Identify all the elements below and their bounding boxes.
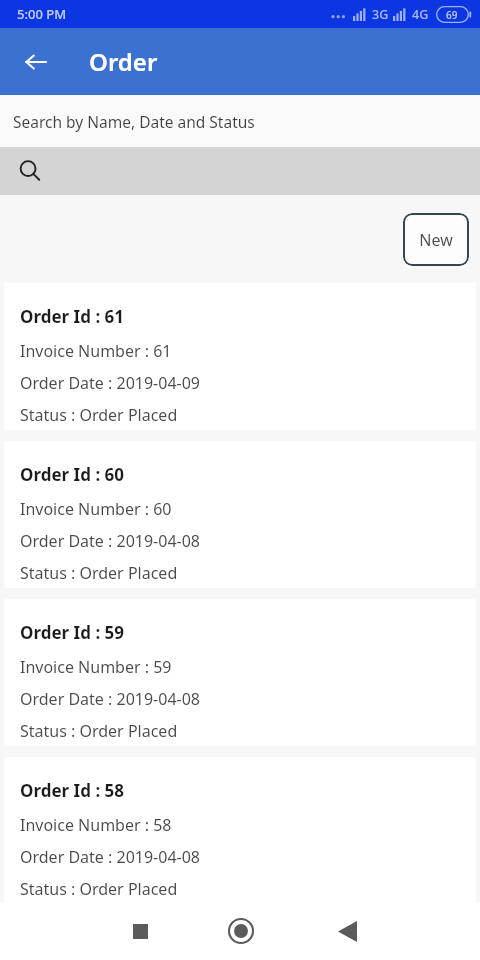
staticText: Order (89, 45, 158, 78)
button[interactable]: Search (0, 147, 480, 195)
button[interactable]: New (403, 213, 469, 266)
staticText: Order Id : 58 (20, 779, 125, 802)
button[interactable]: Back (323, 907, 371, 955)
staticText: Invoice Number : 58 (20, 814, 172, 836)
button[interactable]: Order Id : 59 (4, 599, 476, 746)
staticText: Status : Order Placed (20, 404, 178, 426)
staticText: Status : Order Placed (20, 878, 178, 900)
button[interactable]: Order Id : 60 (4, 441, 476, 588)
button[interactable]: Search by Name, Date and Status (0, 95, 480, 147)
staticText: Invoice Number : 61 (20, 340, 172, 362)
staticText: Order Date : 2019-04-08 (20, 688, 201, 710)
staticText: Order Date : 2019-04-08 (20, 846, 201, 868)
staticText: Order Date : 2019-04-08 (20, 530, 201, 552)
button[interactable]: Back (14, 40, 58, 84)
button[interactable]: Home (217, 907, 265, 955)
staticText: Order Id : 59 (20, 621, 125, 644)
staticText: Invoice Number : 60 (20, 498, 172, 520)
staticText: Invoice Number : 59 (20, 656, 172, 678)
staticText: Order Id : 60 (20, 463, 125, 486)
staticText: Status : Order Placed (20, 720, 178, 742)
staticText: Order Date : 2019-04-09 (20, 372, 201, 394)
staticText: 69 (446, 8, 458, 22)
button[interactable]: Order Id : 58 (4, 757, 476, 902)
staticText: 4G (412, 6, 429, 23)
button[interactable]: Recent apps (116, 907, 164, 955)
staticText: 5:00 PM (17, 5, 67, 23)
staticText: 3G (372, 6, 389, 23)
staticText: New (419, 229, 453, 251)
staticText: Order Id : 61 (20, 305, 125, 328)
staticText: Status : Order Placed (20, 562, 178, 584)
staticText: Search by Name, Date and Status (13, 111, 255, 132)
button[interactable]: Order Id : 61 (4, 283, 476, 430)
